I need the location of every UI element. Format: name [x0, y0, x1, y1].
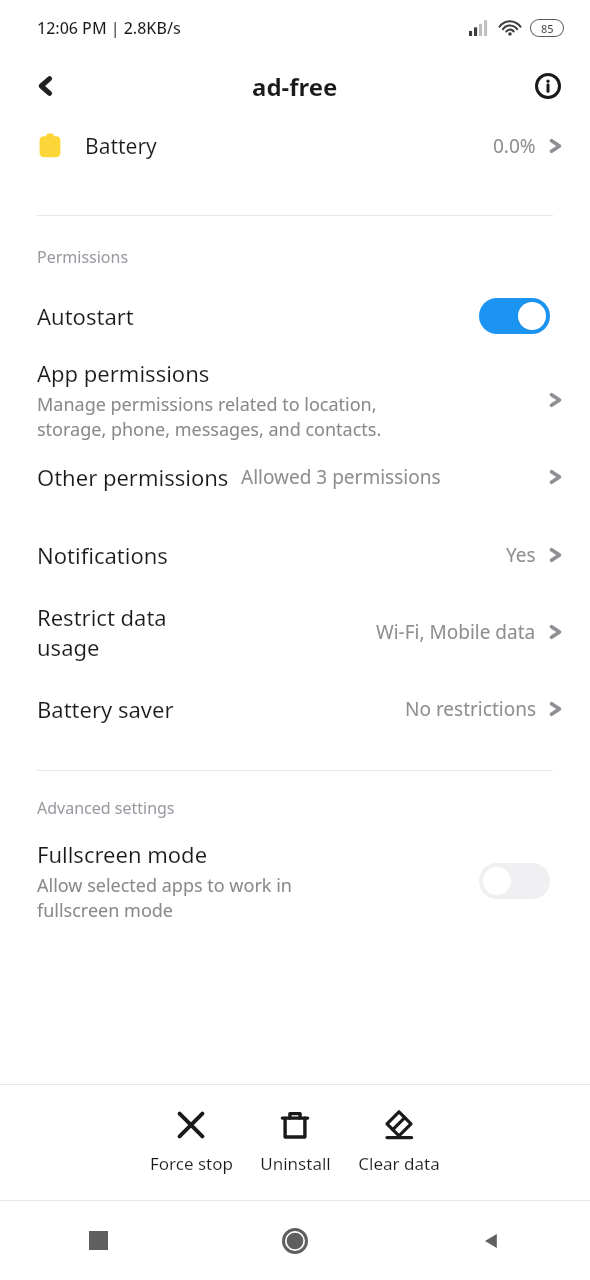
- staticText: Manage permissions related to location,: [37, 392, 377, 417]
- staticText: Permissions: [37, 246, 129, 268]
- staticText: 12:06 PM | 2.8KB/s: [37, 17, 181, 39]
- staticText: Yes: [506, 542, 536, 568]
- button[interactable]: Autostart: [0, 288, 590, 344]
- button[interactable]: Restrict data: [0, 596, 590, 668]
- staticText: Force stop: [150, 1152, 233, 1175]
- staticText: fullscreen mode: [37, 898, 173, 923]
- button[interactable]: App info: [524, 62, 572, 110]
- staticText: Advanced settings: [37, 797, 175, 819]
- staticText: Wi-Fi, Mobile data: [376, 619, 536, 645]
- staticText: usage: [37, 632, 100, 662]
- button[interactable]: Battery saver: [0, 682, 590, 736]
- staticText: ad-free: [252, 70, 338, 103]
- button[interactable]: Recent apps: [0, 1201, 196, 1280]
- staticText: Clear data: [358, 1152, 440, 1175]
- button[interactable]: Clear data: [347, 1085, 451, 1200]
- button[interactable]: Battery: [0, 117, 590, 175]
- staticText: Allow selected apps to work in: [37, 873, 292, 898]
- staticText: Restrict data: [37, 602, 167, 632]
- button[interactable]: Fullscreen mode: [0, 833, 590, 923]
- staticText: No restrictions: [405, 696, 536, 722]
- staticText: Allowed 3 permissions: [241, 464, 441, 490]
- staticText: Battery: [85, 132, 157, 161]
- button[interactable]: Other permissions: [0, 448, 590, 506]
- staticText: Notifications: [37, 540, 168, 570]
- staticText: Uninstall: [260, 1152, 331, 1175]
- staticText: 85: [541, 21, 554, 36]
- button[interactable]: Back: [393, 1201, 590, 1280]
- staticText: Autostart: [37, 301, 134, 331]
- button[interactable]: Force stop: [139, 1085, 243, 1200]
- staticText: App permissions: [37, 358, 210, 388]
- staticText: Fullscreen mode: [37, 839, 208, 869]
- staticText: Battery saver: [37, 694, 174, 724]
- button[interactable]: Uninstall: [243, 1085, 347, 1200]
- button[interactable]: Back: [20, 60, 72, 112]
- staticText: Other permissions: [37, 462, 229, 492]
- button[interactable]: Notifications: [0, 528, 590, 582]
- staticText: storage, phone, messages, and contacts.: [37, 417, 382, 442]
- button[interactable]: App permissions: [0, 344, 590, 448]
- button[interactable]: Home: [196, 1201, 393, 1280]
- staticText: 0.0%: [493, 133, 536, 159]
